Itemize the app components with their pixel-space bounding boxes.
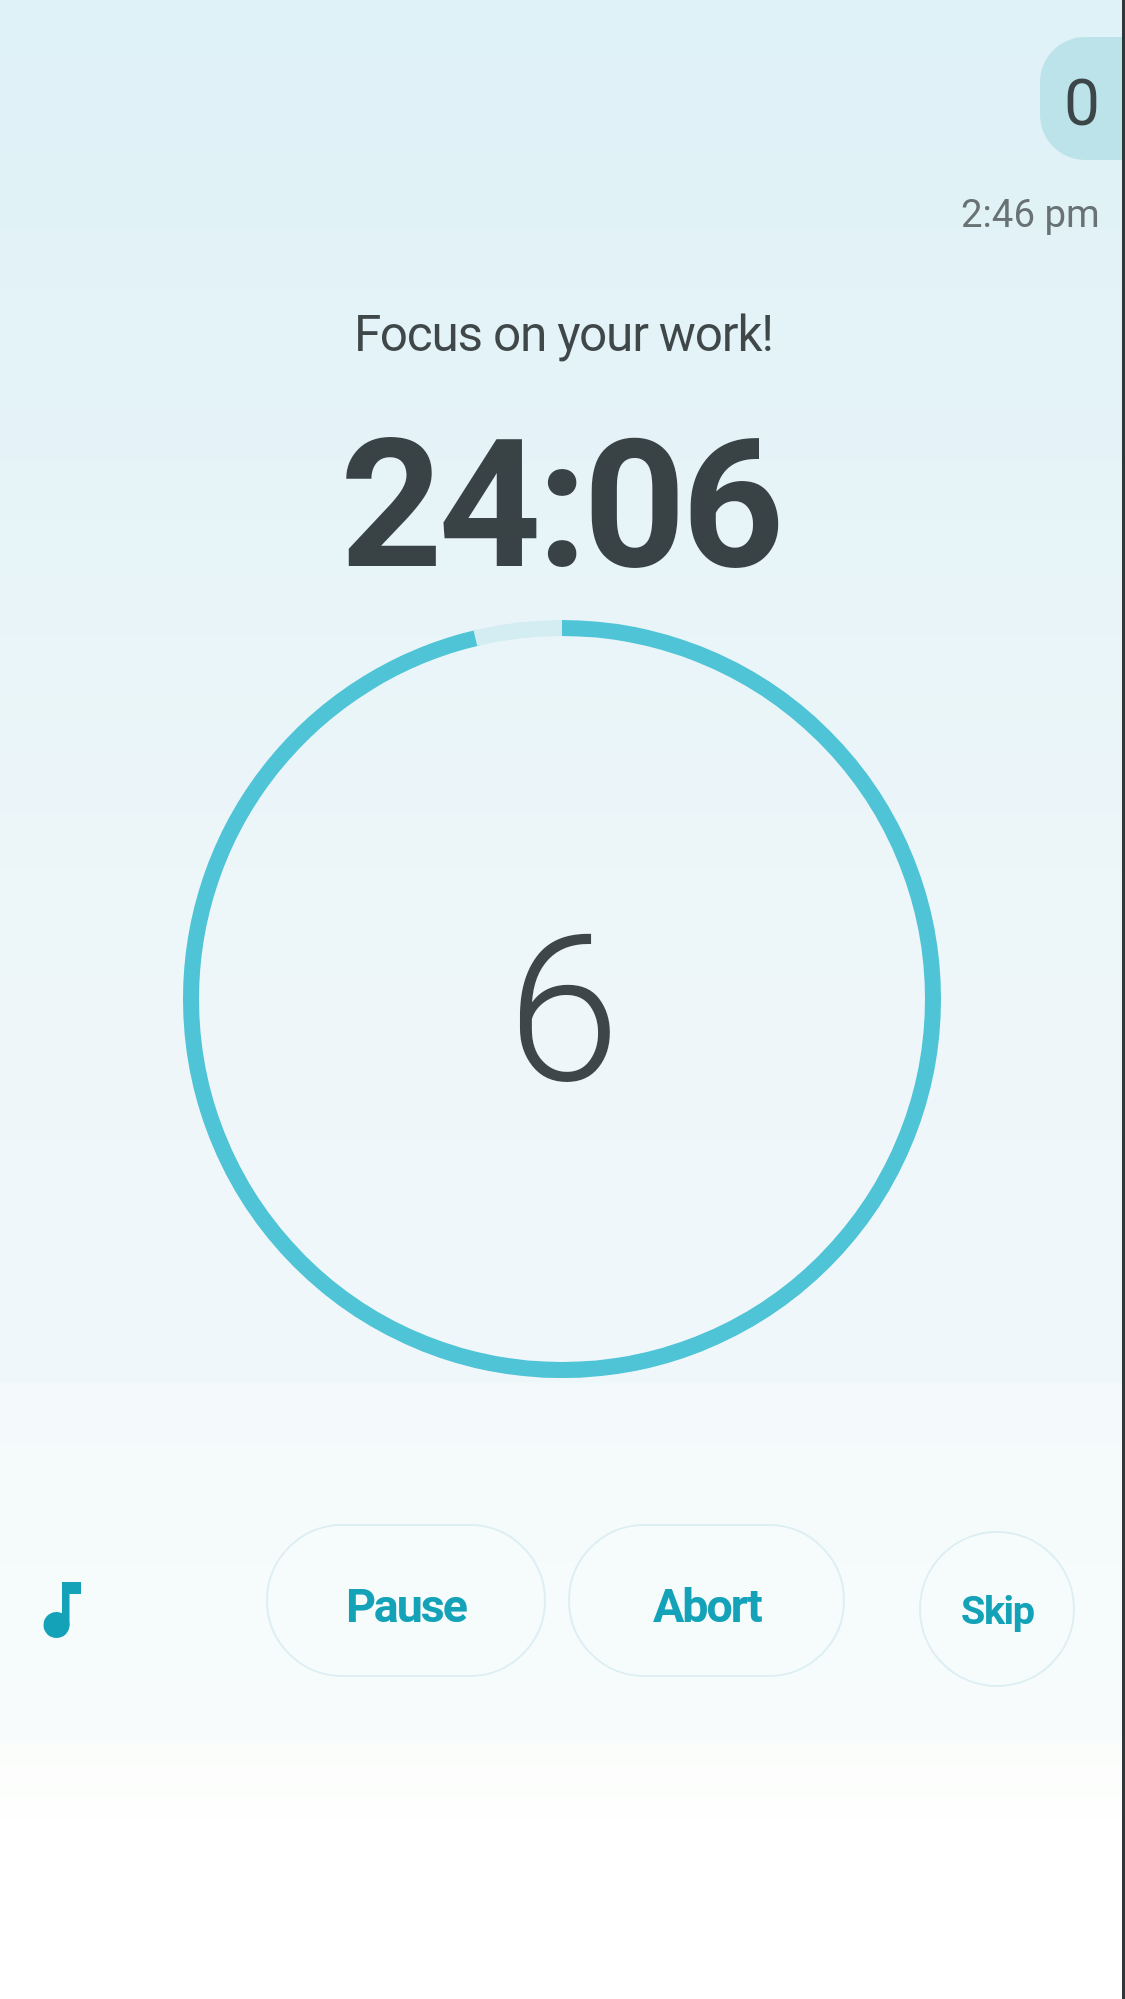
button[interactable]: Abort [568,1524,845,1677]
staticText: Pause [346,1579,466,1633]
staticText: Skip [961,1587,1034,1633]
button[interactable]: Pause [266,1524,546,1677]
staticText: 2:46 pm [961,191,1100,236]
button[interactable] [40,1578,88,1642]
button[interactable]: 0 [1040,37,1125,160]
staticText: Abort [653,1579,761,1633]
staticText: 6 [507,891,621,1130]
button[interactable]: Skip [919,1531,1075,1687]
staticText: 24:06 [340,400,781,610]
staticText: 0 [1064,66,1100,141]
staticText: Focus on your work! [354,305,773,363]
